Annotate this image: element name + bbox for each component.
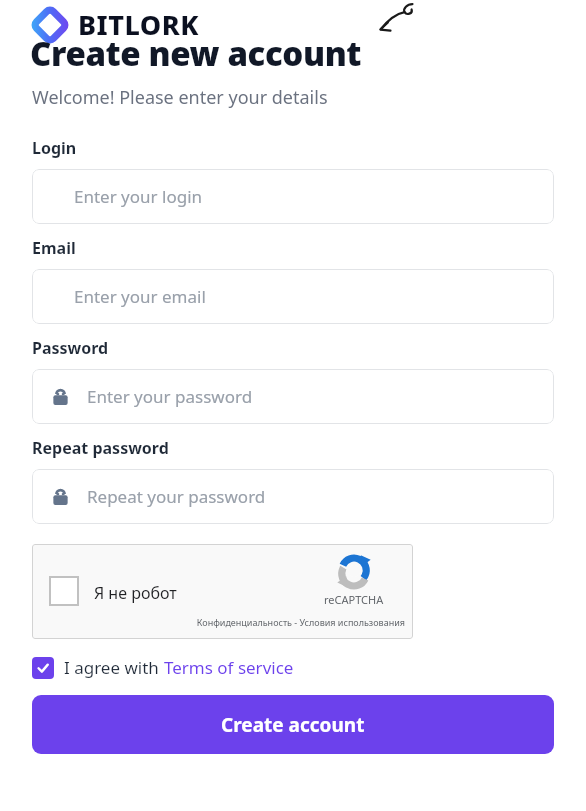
staticText: Repeat password	[32, 437, 169, 459]
staticText: Enter your email	[74, 285, 206, 308]
button[interactable]: Create account	[32, 695, 554, 754]
staticText: Password	[32, 337, 109, 359]
button[interactable]: Terms of service	[164, 656, 294, 679]
staticText: reCAPTCHA	[324, 592, 384, 607]
staticText: Welcome! Please enter your details	[32, 85, 328, 110]
staticText: Create new account	[30, 31, 362, 76]
button[interactable]: I'm not a robot checkbox	[49, 576, 79, 606]
button[interactable]: I'm not a robot checkbox	[32, 544, 413, 639]
staticText: Enter your password	[87, 385, 253, 408]
button[interactable]: Enter your password	[32, 369, 554, 424]
staticText: Login	[32, 137, 77, 159]
staticText: Конфиденциальность - Условия использован…	[32, 616, 405, 628]
staticText: Create account	[221, 712, 365, 738]
button[interactable]: Enter your login	[32, 169, 554, 224]
staticText: Repeat your password	[87, 485, 266, 508]
button[interactable]: I agree with	[32, 656, 294, 679]
button[interactable]: Repeat your password	[32, 469, 554, 524]
staticText: I agree with	[64, 656, 164, 679]
staticText: Я не робот	[94, 582, 177, 604]
staticText: Email	[32, 237, 76, 259]
staticText: BITLORK	[78, 6, 199, 43]
button[interactable]: Bitlork logo	[32, 6, 199, 43]
other: Arrow annotation	[372, 2, 416, 36]
staticText: Enter your login	[74, 185, 203, 208]
button[interactable]: Enter your email	[32, 269, 554, 324]
